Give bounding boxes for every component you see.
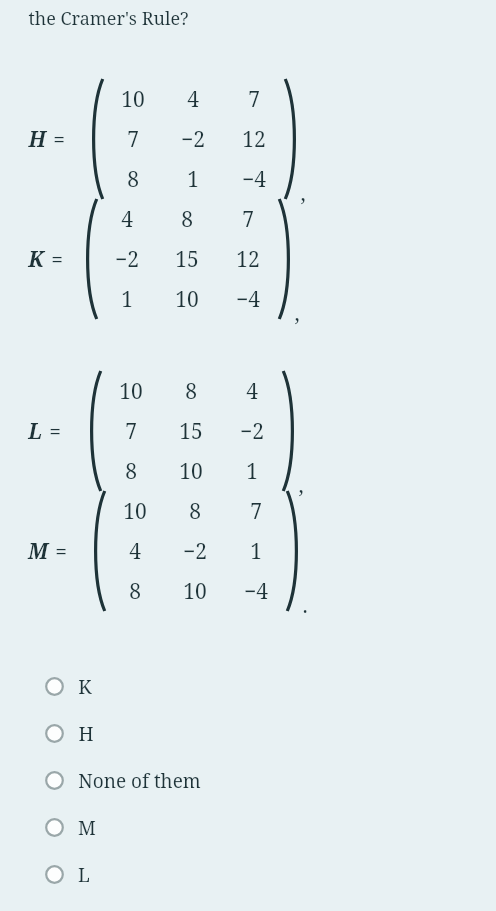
staticText: 8 [189, 497, 201, 526]
staticText: , [298, 471, 304, 500]
staticText: 8 [129, 577, 141, 606]
button[interactable]: None of them [0, 757, 496, 804]
staticText: K [78, 674, 92, 700]
staticText: 7 [242, 205, 254, 234]
staticText: 4 [121, 205, 133, 234]
staticText: −4 [244, 577, 268, 606]
staticText: = [53, 125, 65, 154]
staticText: 10 [121, 85, 145, 114]
staticText: 8 [127, 165, 139, 194]
staticText: = [55, 537, 67, 566]
staticText: 10 [175, 285, 199, 314]
staticText: −4 [236, 285, 260, 314]
staticText: 7 [125, 417, 137, 446]
staticText: 10 [179, 457, 203, 486]
button[interactable]: K [0, 663, 496, 710]
staticText: 7 [127, 125, 139, 154]
staticText: 12 [242, 125, 266, 154]
staticText: 8 [181, 205, 193, 234]
staticText: 7 [248, 85, 260, 114]
staticText: −4 [242, 165, 266, 194]
staticText: = [51, 245, 63, 274]
staticText: 4 [187, 85, 199, 114]
staticText: H [28, 125, 46, 154]
staticText: K [28, 245, 44, 274]
staticText: , [294, 299, 300, 328]
staticText: 10 [119, 377, 143, 406]
staticText: −2 [115, 245, 139, 274]
staticText: 12 [236, 245, 260, 274]
staticText: M [78, 815, 96, 841]
button[interactable]: L [0, 851, 496, 898]
staticText: −2 [240, 417, 264, 446]
staticText: 1 [246, 457, 258, 486]
staticText: 1 [250, 537, 262, 566]
staticText: 7 [250, 497, 262, 526]
staticText: . [302, 591, 308, 620]
staticText: −2 [183, 537, 207, 566]
staticText: 4 [129, 537, 141, 566]
staticText: 8 [185, 377, 197, 406]
staticText: None of them [78, 768, 201, 794]
staticText: 1 [187, 165, 199, 194]
staticText: 8 [125, 457, 137, 486]
staticText: M [28, 537, 48, 566]
staticText: 10 [183, 577, 207, 606]
staticText: H [78, 721, 94, 747]
staticText: 10 [123, 497, 147, 526]
staticText: L [78, 862, 90, 888]
staticText: −2 [181, 125, 205, 154]
staticText: the Cramer's Rule? [28, 6, 189, 31]
staticText: 1 [121, 285, 133, 314]
staticText: = [49, 417, 61, 446]
staticText: 4 [246, 377, 258, 406]
staticText: 15 [179, 417, 203, 446]
staticText: , [300, 179, 306, 208]
staticText: 15 [175, 245, 199, 274]
button[interactable]: H [0, 710, 496, 757]
button[interactable]: M [0, 804, 496, 851]
staticText: L [28, 417, 42, 446]
